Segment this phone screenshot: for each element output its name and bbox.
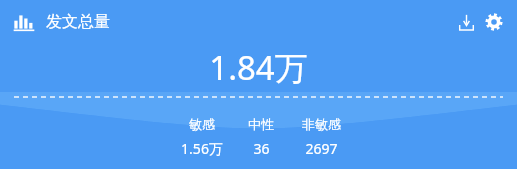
button[interactable]: 设置	[481, 9, 507, 35]
staticText: 1.84万	[209, 45, 308, 90]
staticText: 36	[253, 139, 270, 158]
button[interactable]: 下载	[453, 9, 479, 35]
staticText: 发文总量	[46, 12, 110, 32]
staticText: 2697	[305, 139, 338, 158]
button[interactable]: 非敏感	[286, 116, 357, 158]
button[interactable]: 中性	[236, 116, 286, 158]
button[interactable]: 敏感	[168, 116, 236, 158]
staticText: 中性	[248, 116, 274, 132]
staticText: 1.56万	[181, 139, 223, 158]
staticText: 非敏感	[302, 116, 341, 132]
staticText: 敏感	[189, 116, 215, 132]
other: 发文总量图标	[13, 11, 35, 33]
